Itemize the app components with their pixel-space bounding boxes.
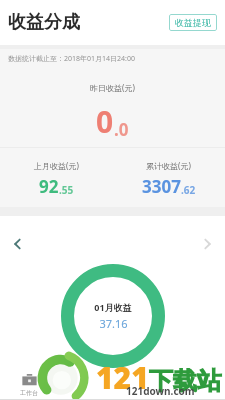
- staticText: .0: [114, 118, 129, 141]
- staticText: .62: [181, 183, 196, 197]
- staticText: 收益分成: [8, 11, 80, 34]
- staticText: 37.16: [99, 316, 128, 331]
- staticText: 121down.com: [126, 384, 195, 398]
- staticText: 累计收益(元): [146, 160, 191, 171]
- staticText: 工作台: [20, 389, 38, 397]
- staticText: 数据统计截止至：2018年01月14日24:00: [8, 54, 135, 64]
- staticText: .55: [59, 183, 74, 197]
- staticText: 0: [96, 101, 114, 142]
- staticText: 上月收益(元): [34, 160, 79, 171]
- staticText: 3307: [142, 175, 181, 198]
- staticText: 01月收益: [94, 301, 132, 313]
- staticText: 收益提现: [175, 17, 211, 28]
- staticText: 92: [39, 175, 59, 198]
- button[interactable]: 工作台: [20, 372, 38, 397]
- button[interactable]: Next month: [193, 231, 219, 257]
- button[interactable]: Previous month: [6, 231, 32, 257]
- staticText: 121: [96, 357, 149, 398]
- button[interactable]: 收益提现: [169, 14, 217, 31]
- staticText: 昨日收益(元): [90, 82, 135, 93]
- staticText: 下载站: [149, 366, 221, 396]
